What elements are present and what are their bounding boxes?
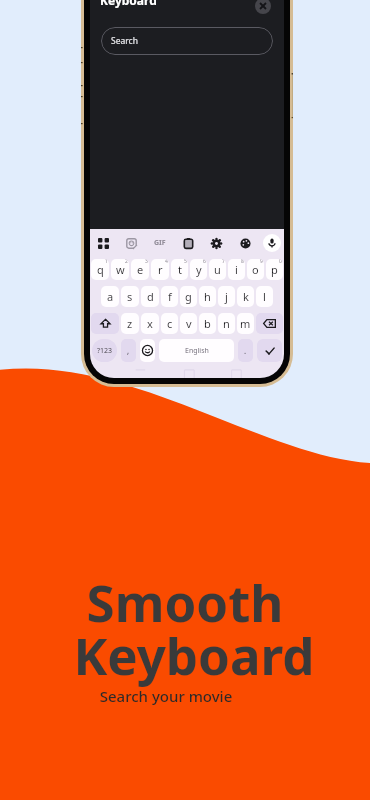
staticText: h [204,289,211,304]
button[interactable]: Voice input [263,234,281,252]
button[interactable]: Stickers [121,233,141,253]
staticText: a [107,289,114,304]
staticText: c [167,316,173,331]
staticText: p [271,262,278,277]
button[interactable]: a [101,286,119,307]
staticText: k [243,289,249,304]
button[interactable]: x [141,313,159,334]
button[interactable]: d [141,286,159,307]
button[interactable]: Backspace [256,313,283,334]
button[interactable]: e [131,259,149,280]
staticText: 8 [241,259,244,265]
staticText: 7 [222,259,225,265]
button[interactable]: o [247,259,264,280]
button[interactable]: y [190,259,207,280]
button[interactable]: q [91,259,109,280]
button[interactable]: u [209,259,226,280]
button[interactable]: l [256,286,273,307]
button[interactable]: Apps [93,233,113,253]
staticText: u [214,262,221,277]
staticText: 0 [279,259,282,265]
staticText: English [185,346,209,356]
button[interactable]: , [121,339,136,362]
staticText: i [235,262,238,277]
button[interactable]: f [161,286,178,307]
staticText: e [137,262,144,277]
button[interactable]: h [199,286,216,307]
button[interactable]: b [199,313,216,334]
staticText: o [252,262,259,277]
staticText: l [263,289,266,304]
button[interactable]: r [151,259,169,280]
staticText: s [127,289,133,304]
staticText: d [147,289,154,304]
staticText: f [168,289,172,304]
staticText: n [223,316,230,331]
staticText: v [186,316,192,331]
staticText: w [116,262,125,277]
staticText: y [196,262,202,277]
staticText: . [244,345,247,356]
staticText: j [225,289,228,304]
staticText: m [240,316,251,331]
staticText: Keyboard [9,620,370,689]
staticText: , [127,345,130,356]
button[interactable]: g [180,286,197,307]
staticText: x [147,316,153,331]
staticText: b [204,316,211,331]
button[interactable]: t [171,259,188,280]
button[interactable]: v [180,313,197,334]
button[interactable]: . [238,339,253,362]
staticText: r [158,262,163,277]
staticText: 2 [125,259,128,265]
staticText: t [178,262,182,277]
button[interactable]: i [228,259,245,280]
staticText: 1 [105,259,108,265]
button[interactable]: Settings [206,233,226,253]
button[interactable]: Close [255,0,271,14]
staticText: z [127,316,133,331]
staticText: 6 [203,259,206,265]
button[interactable]: Emoji [140,339,155,362]
button[interactable]: Search [101,27,273,55]
button[interactable]: j [218,286,235,307]
staticText: Search [111,35,138,47]
button[interactable]: z [121,313,139,334]
button[interactable]: Enter [257,339,282,362]
button[interactable]: English [159,339,234,362]
button[interactable]: s [121,286,139,307]
staticText: Smooth [0,567,370,636]
staticText: 4 [165,259,168,265]
staticText: 3 [145,259,148,265]
button[interactable]: n [218,313,235,334]
staticText: GIF [154,238,166,248]
staticText: 5 [184,259,187,265]
button[interactable]: p [266,259,283,280]
staticText: Search your movie [0,686,351,706]
button[interactable]: m [237,313,254,334]
staticText: Keyboard [100,0,157,8]
button[interactable]: Theme [235,233,255,253]
button[interactable]: w [111,259,129,280]
button[interactable]: k [237,286,254,307]
staticText: ?123 [97,346,113,356]
button[interactable]: c [161,313,178,334]
staticText: g [185,289,192,304]
button[interactable]: ?123 [92,339,117,362]
staticText: q [97,262,104,277]
staticText: 9 [260,259,263,265]
button[interactable]: Shift [91,313,119,334]
button[interactable]: Clipboard [178,233,198,253]
